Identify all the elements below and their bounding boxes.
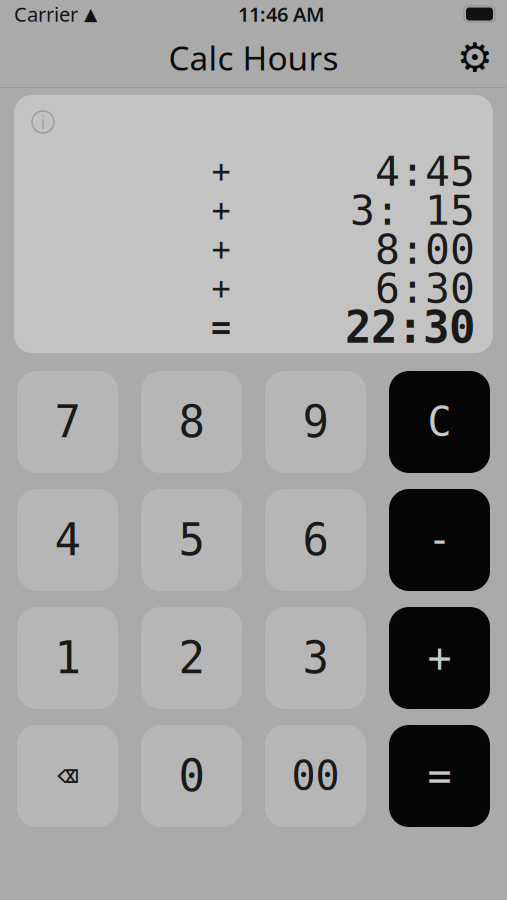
staticText: C [427, 399, 451, 445]
staticText: 6:30 [375, 265, 475, 312]
staticText: ▲ [84, 4, 97, 24]
button[interactable]: 7 [17, 371, 118, 473]
staticText: + [211, 270, 230, 307]
button[interactable]: 3 [265, 607, 366, 709]
staticText: ⌫ [57, 756, 78, 796]
staticText: ⚙ [457, 35, 493, 80]
button[interactable]: 00 [265, 725, 366, 827]
staticText: + [211, 192, 230, 229]
button[interactable]: Equals [389, 725, 490, 827]
button[interactable]: Delete [17, 725, 118, 827]
button[interactable]: 4 [17, 489, 118, 591]
button[interactable]: 8 [141, 371, 242, 473]
staticText: 5 [178, 515, 204, 565]
staticText: 3 [302, 633, 328, 683]
button[interactable]: Info [26, 105, 60, 139]
staticText: = [211, 309, 231, 346]
staticText: 8:00 [375, 226, 475, 273]
staticText: + [427, 635, 451, 681]
button[interactable]: 0 [141, 725, 242, 827]
staticText: 6 [302, 515, 328, 565]
button[interactable]: Plus [389, 607, 490, 709]
staticText: = [427, 753, 451, 799]
staticText: 3: 15 [350, 187, 475, 234]
staticText: + [211, 153, 230, 190]
button[interactable]: Settings [451, 33, 499, 81]
button[interactable]: 6 [265, 489, 366, 591]
button[interactable]: 1 [17, 607, 118, 709]
staticText: 8 [178, 397, 204, 447]
staticText: 0 [178, 751, 204, 801]
staticText: i [40, 110, 45, 134]
button[interactable]: 2 [141, 607, 242, 709]
staticText: 2 [178, 633, 204, 683]
staticText: - [427, 517, 451, 563]
staticText: 4:45 [375, 148, 475, 195]
staticText: 9 [302, 397, 328, 447]
staticText: Carrier [14, 1, 78, 27]
staticText: Calc Hours [168, 35, 338, 80]
button[interactable]: Minus [389, 489, 490, 591]
button[interactable]: 9 [265, 371, 366, 473]
button[interactable]: Clear [389, 371, 490, 473]
staticText: 1 [54, 633, 80, 683]
button[interactable]: 5 [141, 489, 242, 591]
staticText: 22:30 [345, 302, 475, 352]
staticText: 4 [54, 515, 80, 565]
staticText: 7 [54, 397, 80, 447]
staticText: + [211, 231, 230, 268]
staticText: 11:46 AM [238, 1, 325, 27]
staticText: 00 [291, 753, 339, 799]
